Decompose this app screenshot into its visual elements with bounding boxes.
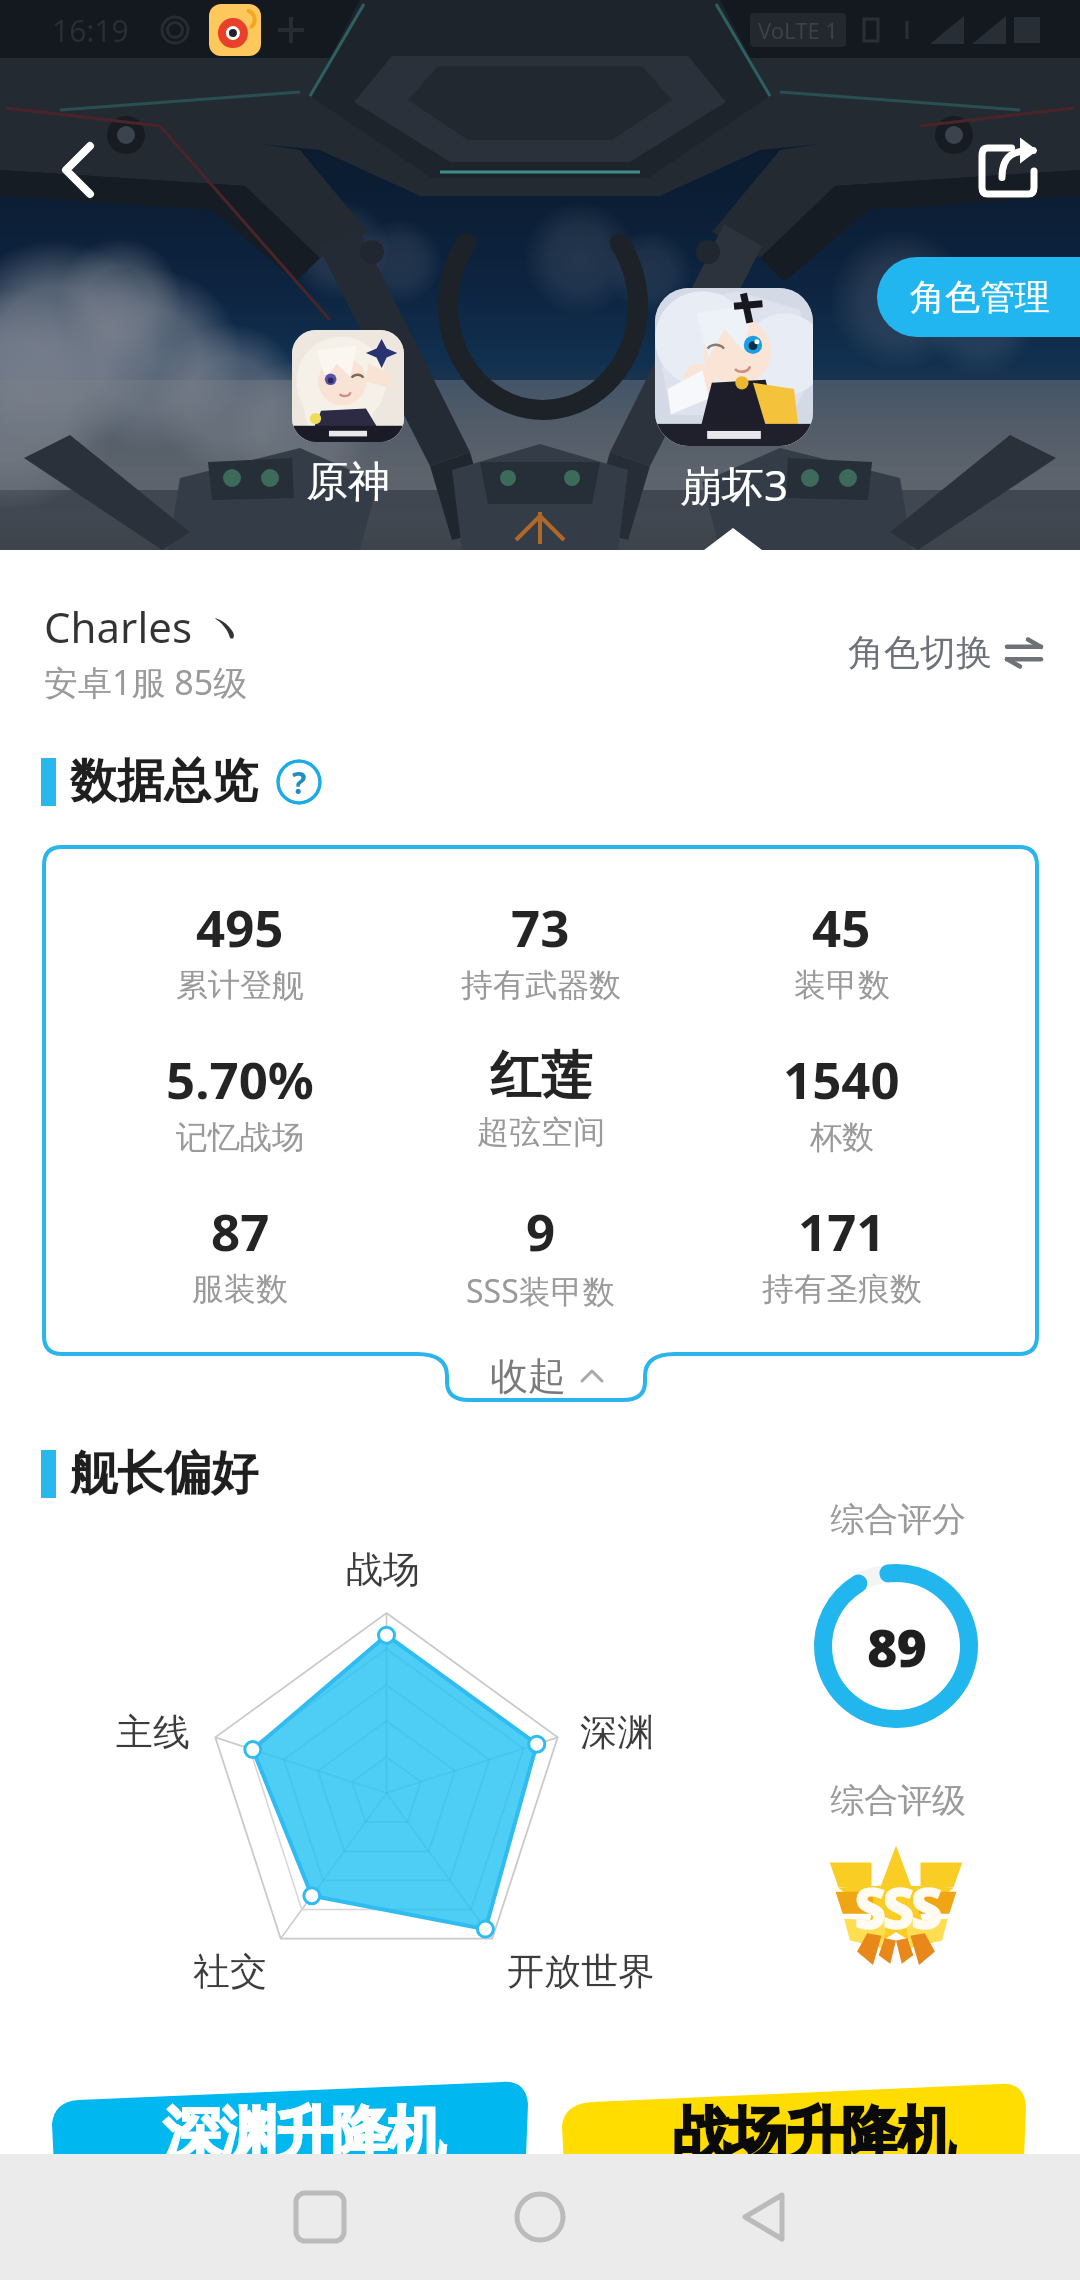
staticText: 崩坏3 xyxy=(680,456,789,513)
staticText: 89 xyxy=(867,1611,926,1682)
staticText: 深渊升降机 xyxy=(164,2098,444,2171)
button[interactable]: 角色切换 xyxy=(848,630,1042,675)
staticText: 舰长偏好 xyxy=(70,1444,258,1503)
staticText: 171 xyxy=(798,1196,886,1265)
staticText: 持有武器数 xyxy=(461,965,621,1005)
staticText: 社交 xyxy=(193,1948,267,1995)
staticText: 73 xyxy=(511,892,570,961)
staticText: 装甲数 xyxy=(794,965,890,1005)
button[interactable]: 角色管理 xyxy=(877,257,1080,337)
staticText: 杯数 xyxy=(810,1117,874,1157)
staticText: 持有圣痕数 xyxy=(762,1269,922,1309)
button[interactable]: 原神 xyxy=(292,330,404,442)
staticText: Charles ヽ xyxy=(44,598,245,655)
button[interactable]: 收起 xyxy=(490,1352,604,1400)
button[interactable]: Help xyxy=(276,759,322,805)
staticText: 战场升降机 xyxy=(674,2098,954,2171)
staticText: 深渊 xyxy=(580,1709,654,1756)
staticText: 角色切换 xyxy=(848,630,992,675)
staticText: 主线 xyxy=(116,1709,190,1756)
staticText: 45 xyxy=(812,892,871,961)
staticText: 综合评分 xyxy=(830,1498,966,1541)
button[interactable]: Recents xyxy=(265,2162,375,2272)
button[interactable]: Share xyxy=(971,137,1045,205)
staticText: 记忆战场 xyxy=(176,1117,304,1157)
staticText: 9 xyxy=(526,1196,556,1265)
staticText: 5.70% xyxy=(166,1044,314,1113)
staticText: 服装数 xyxy=(192,1269,288,1309)
staticText: 1540 xyxy=(783,1044,900,1113)
staticText: VoLTE 1 xyxy=(758,15,838,45)
staticText: 红莲 xyxy=(490,1044,592,1108)
staticText: 87 xyxy=(211,1196,270,1265)
staticText: 收起 xyxy=(490,1352,566,1400)
button[interactable]: 战场升降机 xyxy=(552,2076,1042,2208)
staticText: 累计登舰 xyxy=(176,965,304,1005)
staticText: 495 xyxy=(196,892,284,961)
staticText: 角色管理 xyxy=(910,275,1050,319)
staticText: 战场 xyxy=(346,1546,420,1593)
staticText: 开放世界 xyxy=(507,1948,655,1995)
button[interactable]: Back xyxy=(708,2162,818,2272)
staticText: 数据总览 xyxy=(70,752,258,811)
staticText: 综合评级 xyxy=(830,1779,966,1822)
staticText: 超弦空间 xyxy=(477,1112,605,1152)
staticText: 原神 xyxy=(306,456,390,509)
button[interactable]: Back xyxy=(40,125,116,215)
staticText: SSS装甲数 xyxy=(466,1269,615,1313)
button[interactable]: 崩坏3 xyxy=(655,288,813,446)
staticText: 安卓1服 85级 xyxy=(44,659,248,705)
staticText: 16:19 xyxy=(52,10,129,51)
staticText: SSS xyxy=(854,1869,939,1945)
button[interactable]: 深渊升降机 xyxy=(46,2078,532,2208)
staticText: ? xyxy=(292,762,307,803)
button[interactable]: Home xyxy=(485,2162,595,2272)
